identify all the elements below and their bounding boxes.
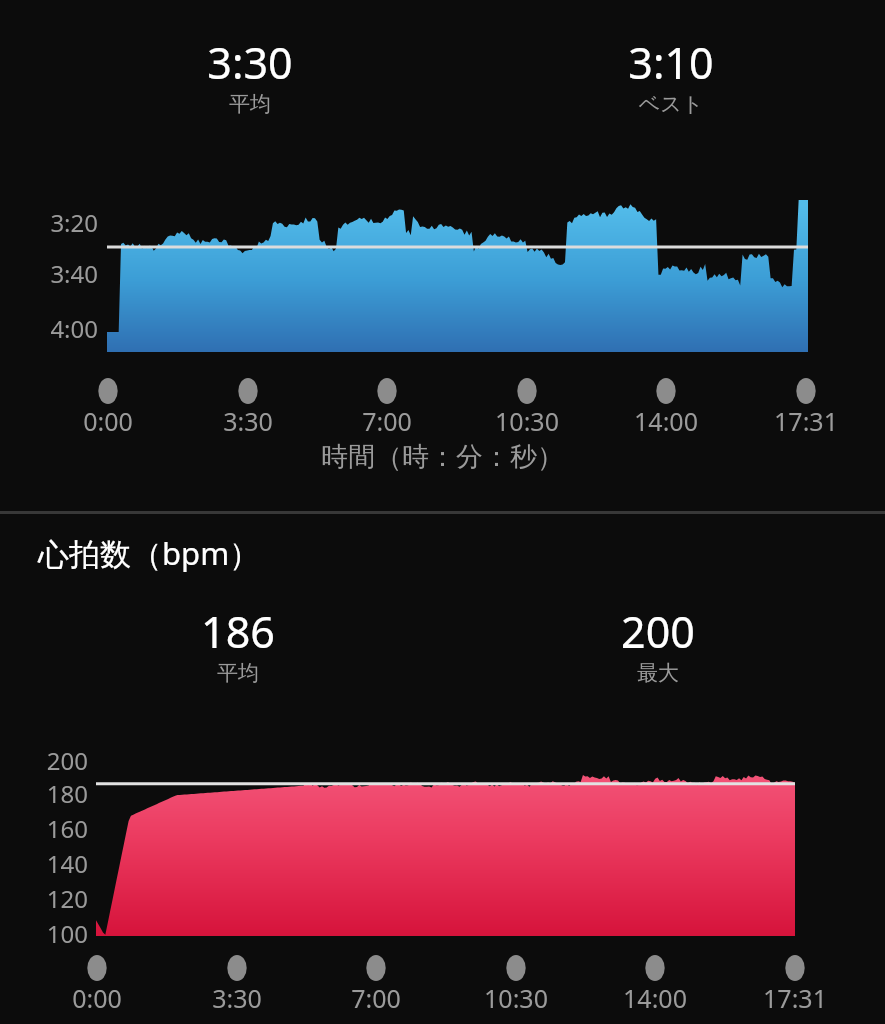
staticText: 180	[16, 777, 88, 810]
staticText: 3:20	[18, 206, 98, 239]
staticText: 0:00	[38, 404, 178, 438]
staticText: 0:00	[27, 981, 167, 1015]
staticText: ベスト	[561, 91, 781, 117]
staticText: 200	[548, 602, 768, 661]
button[interactable]: 3:10	[561, 33, 781, 125]
button[interactable]: 心拍数（bpm）	[38, 532, 261, 574]
staticText: 17:31	[736, 404, 876, 438]
staticText: 3:10	[561, 33, 781, 92]
staticText: 7:00	[306, 981, 446, 1015]
staticText: 10:30	[457, 404, 597, 438]
staticText: 140	[16, 847, 88, 880]
staticText: 3:30	[140, 33, 360, 92]
staticText: 200	[16, 744, 88, 777]
staticText: 14:00	[585, 981, 725, 1015]
button[interactable]: 3:30	[140, 33, 360, 125]
staticText: 160	[16, 812, 88, 845]
staticText: 4:00	[18, 312, 98, 345]
staticText: 7:00	[317, 404, 457, 438]
staticText: 14:00	[596, 404, 736, 438]
staticText: 186	[128, 602, 348, 661]
button[interactable]: 186	[128, 602, 348, 694]
staticText: 100	[16, 917, 88, 950]
staticText: 3:30	[167, 981, 307, 1015]
staticText: 17:31	[725, 981, 865, 1015]
staticText: 時間（時：分：秒）	[0, 440, 885, 474]
button[interactable]: 200	[548, 602, 768, 694]
staticText: 10:30	[446, 981, 586, 1015]
staticText: 平均	[140, 91, 360, 117]
staticText: 心拍数（bpm）	[38, 532, 261, 574]
staticText: 最大	[548, 660, 768, 686]
staticText: 3:30	[178, 404, 318, 438]
staticText: 平均	[128, 660, 348, 686]
staticText: 3:40	[18, 257, 98, 290]
staticText: 120	[16, 882, 88, 915]
